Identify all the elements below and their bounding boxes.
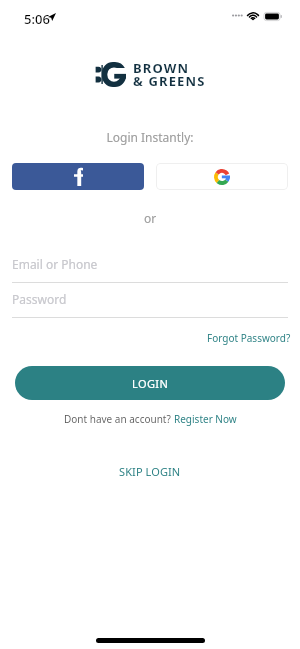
other: Login with Google — [214, 169, 230, 185]
staticText: BROWN & GREENS — [133, 59, 206, 90]
staticText: Email or Phone — [12, 256, 98, 272]
button[interactable]: Email or Phone — [12, 256, 288, 282]
staticText: Register Now — [174, 412, 237, 426]
staticText: Password — [12, 291, 67, 307]
button[interactable]: Password — [12, 291, 288, 317]
staticText: Login Instantly: — [0, 129, 300, 145]
button[interactable]: Login with Google — [156, 163, 288, 190]
button[interactable]: Login with Facebook — [12, 163, 144, 190]
button[interactable]: Dont have an account? — [64, 412, 237, 426]
other: Login with Facebook — [74, 168, 83, 186]
button[interactable]: Forgot Password? — [207, 331, 291, 345]
button[interactable]: SKIP LOGIN — [119, 464, 181, 479]
button[interactable]: LOGIN — [15, 366, 285, 400]
staticText: or — [0, 210, 300, 226]
staticText: Dont have an account? — [64, 412, 174, 426]
staticText: LOGIN — [132, 376, 169, 391]
staticText: 5:06 — [24, 10, 50, 28]
